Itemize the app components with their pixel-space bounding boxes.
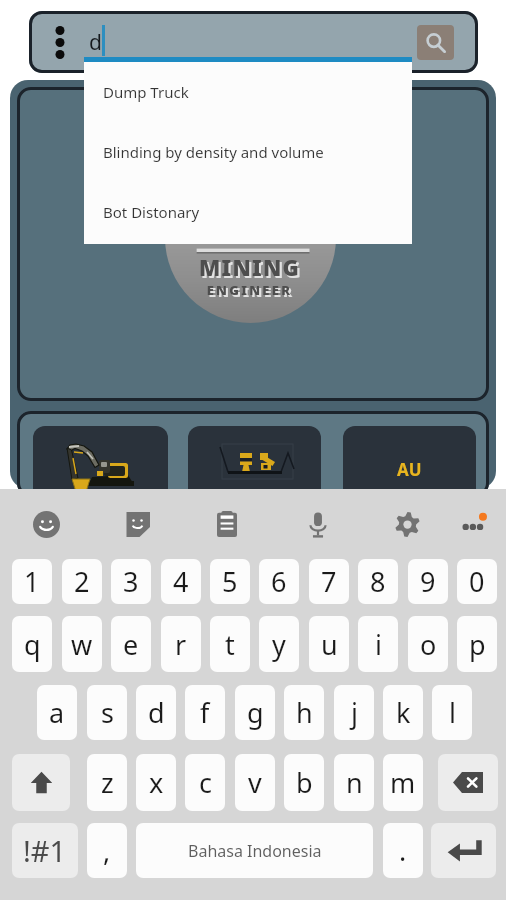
- button[interactable]: 8: [358, 559, 398, 604]
- button[interactable]: k: [383, 685, 423, 740]
- button[interactable]: 4: [161, 559, 201, 604]
- button[interactable]: r: [161, 616, 201, 672]
- button[interactable]: Shift: [12, 754, 70, 811]
- button[interactable]: a: [37, 685, 77, 740]
- staticText: 8: [370, 563, 386, 600]
- button[interactable]: Settings: [385, 502, 429, 546]
- staticText: 4: [173, 563, 189, 600]
- button[interactable]: e: [111, 616, 151, 672]
- staticText: 2: [74, 563, 90, 600]
- staticText: j: [351, 694, 358, 731]
- button[interactable]: More: [452, 502, 496, 546]
- staticText: Bahasa Indonesia: [188, 840, 322, 862]
- button[interactable]: Clipboard: [205, 502, 249, 546]
- button[interactable]: d: [136, 685, 176, 740]
- button[interactable]: b: [284, 754, 324, 811]
- button[interactable]: More options: [37, 11, 83, 73]
- button[interactable]: 9: [408, 559, 448, 604]
- button[interactable]: t: [210, 616, 250, 672]
- button[interactable]: AU: [343, 426, 476, 510]
- button[interactable]: .: [383, 823, 423, 878]
- button[interactable]: !#1: [12, 823, 78, 878]
- button[interactable]: y: [259, 616, 299, 672]
- button[interactable]: z: [87, 754, 127, 811]
- button[interactable]: [33, 426, 168, 510]
- staticText: 1: [24, 563, 40, 600]
- button[interactable]: v: [235, 754, 275, 811]
- staticText: d: [89, 28, 102, 57]
- button[interactable]: u: [309, 616, 349, 672]
- button[interactable]: Blinding by density and volume: [84, 122, 412, 182]
- button[interactable]: w: [62, 616, 102, 672]
- button[interactable]: n: [334, 754, 374, 811]
- staticText: Dump Truck: [103, 82, 189, 102]
- staticText: !#1: [23, 831, 67, 870]
- button[interactable]: Bahasa Indonesia: [136, 823, 373, 878]
- button[interactable]: 5: [210, 559, 250, 604]
- button[interactable]: ,: [87, 823, 127, 878]
- button[interactable]: x: [136, 754, 176, 811]
- button[interactable]: 3: [111, 559, 151, 604]
- button[interactable]: j: [334, 685, 374, 740]
- staticText: ENGINEER: [172, 283, 331, 301]
- staticText: 5: [222, 563, 238, 600]
- button[interactable]: Stickers: [115, 502, 159, 546]
- staticText: y: [272, 626, 286, 663]
- button[interactable]: s: [87, 685, 127, 740]
- button[interactable]: c: [185, 754, 225, 811]
- button[interactable]: 7: [309, 559, 349, 604]
- staticText: o: [420, 626, 437, 663]
- staticText: a: [49, 694, 65, 731]
- button[interactable]: i: [358, 616, 398, 672]
- staticText: 0: [469, 563, 485, 600]
- staticText: q: [24, 626, 41, 663]
- button[interactable]: Voice input: [296, 502, 340, 546]
- button[interactable]: [188, 426, 321, 510]
- staticText: n: [346, 764, 363, 801]
- staticText: f: [200, 694, 210, 731]
- staticText: k: [396, 694, 411, 731]
- staticText: t: [225, 626, 235, 663]
- staticText: w: [71, 626, 93, 663]
- staticText: z: [101, 764, 114, 801]
- button[interactable]: o: [408, 616, 448, 672]
- staticText: AU: [397, 458, 422, 481]
- staticText: l: [449, 694, 456, 731]
- staticText: g: [247, 694, 264, 731]
- staticText: d: [148, 694, 165, 731]
- staticText: x: [149, 764, 164, 801]
- button[interactable]: Enter: [431, 823, 496, 878]
- staticText: m: [390, 764, 416, 801]
- staticText: i: [375, 626, 382, 663]
- button[interactable]: 1: [12, 559, 52, 604]
- button[interactable]: 6: [259, 559, 299, 604]
- button[interactable]: 0: [457, 559, 497, 604]
- staticText: MINING: [170, 252, 329, 282]
- button[interactable]: m: [383, 754, 423, 811]
- button[interactable]: f: [185, 685, 225, 740]
- button[interactable]: Backspace: [438, 754, 498, 811]
- button[interactable]: p: [457, 616, 497, 672]
- button[interactable]: Search: [417, 25, 454, 60]
- staticText: v: [248, 764, 262, 801]
- button[interactable]: Dump Truck: [84, 62, 412, 122]
- button[interactable]: l: [432, 685, 472, 740]
- staticText: u: [321, 626, 338, 663]
- staticText: 6: [271, 563, 287, 600]
- staticText: c: [199, 764, 212, 801]
- button[interactable]: Emoji: [24, 502, 68, 546]
- button[interactable]: Bot Distonary: [84, 182, 412, 242]
- button[interactable]: g: [235, 685, 275, 740]
- staticText: .: [399, 832, 407, 869]
- button[interactable]: h: [284, 685, 324, 740]
- staticText: h: [296, 694, 313, 731]
- staticText: p: [469, 626, 486, 663]
- button[interactable]: q: [12, 616, 52, 672]
- staticText: e: [123, 626, 139, 663]
- button[interactable]: 2: [62, 559, 102, 604]
- staticText: Bot Distonary: [103, 202, 200, 222]
- staticText: ENGINEER: [170, 281, 329, 299]
- staticText: MINING: [172, 254, 331, 284]
- staticText: 7: [321, 563, 337, 600]
- staticText: ,: [103, 832, 111, 869]
